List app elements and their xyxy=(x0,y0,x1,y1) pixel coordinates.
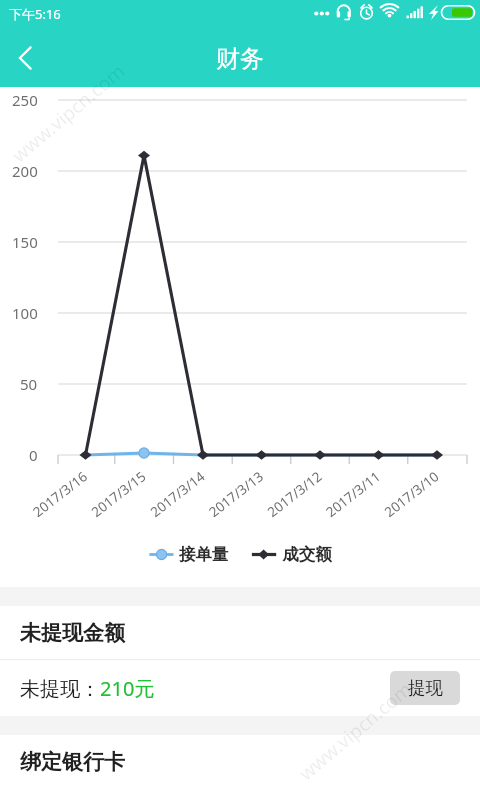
button[interactable]: 提现 xyxy=(390,671,460,705)
button[interactable]: 绑定银行卡 xyxy=(0,735,480,788)
staticText: 未提现：210元 xyxy=(20,675,155,702)
button[interactable]: Back xyxy=(8,41,42,75)
staticText: 财务 xyxy=(216,44,264,74)
staticText: 绑定银行卡 xyxy=(20,749,125,775)
staticText: 下午5:16 xyxy=(9,5,61,23)
button[interactable]: 未提现金额 xyxy=(0,606,480,659)
staticText: 未提现金额 xyxy=(20,620,125,646)
staticText: 提现 xyxy=(408,677,443,699)
